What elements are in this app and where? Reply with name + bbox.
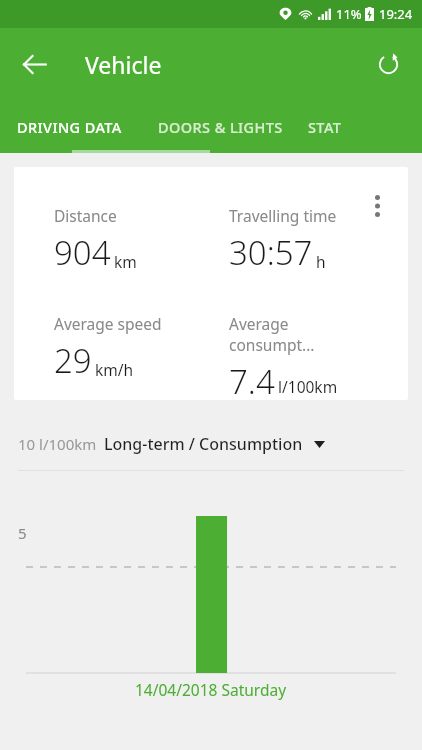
staticText: km/h — [95, 359, 134, 380]
staticText: 11% — [336, 5, 362, 23]
staticText: Travelling time — [229, 205, 337, 226]
staticText: Distance — [54, 205, 117, 226]
staticText: 30:57 — [229, 230, 313, 275]
button[interactable]: More options — [14, 167, 408, 400]
staticText: h — [316, 251, 326, 272]
button[interactable]: DOORS & LIGHTS — [138, 100, 302, 153]
staticText: 10 l/100km — [18, 434, 97, 454]
staticText: 29 — [54, 338, 92, 383]
staticText: Vehicle — [85, 49, 162, 80]
button[interactable]: STAT — [302, 100, 422, 153]
button[interactable]: More options — [360, 189, 394, 223]
button[interactable]: 10 l/100km — [18, 430, 422, 458]
staticText: Long-term / Consumption — [104, 433, 303, 455]
staticText: Average consumpt... — [229, 313, 369, 355]
staticText: l/100km — [278, 376, 338, 397]
staticText: 904 — [54, 230, 111, 275]
staticText: STAT — [308, 117, 342, 137]
staticText: Average speed — [54, 313, 162, 334]
staticText: 7.4 — [229, 359, 275, 400]
staticText: 14/04/2018 Saturday — [135, 679, 287, 700]
staticText: 5 — [18, 523, 27, 543]
staticText: km — [114, 251, 137, 272]
staticText: DRIVING DATA — [17, 117, 122, 137]
staticText: 19:24 — [379, 5, 413, 23]
button[interactable]: DRIVING DATA — [0, 100, 138, 153]
button[interactable]: Refresh — [364, 40, 412, 88]
button[interactable]: Back — [10, 40, 58, 88]
staticText: DOORS & LIGHTS — [158, 117, 283, 137]
